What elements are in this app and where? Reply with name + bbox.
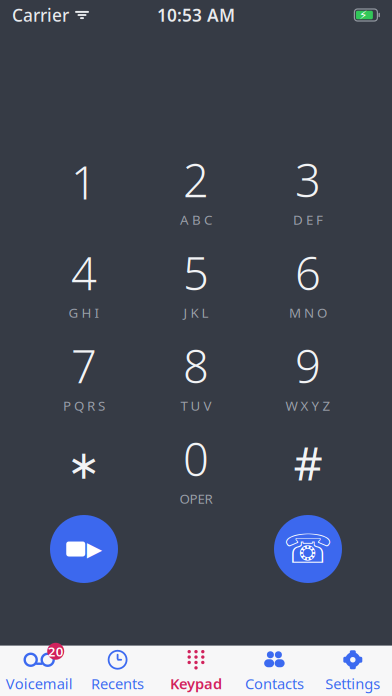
button[interactable]: ∗ <box>32 433 136 503</box>
staticText: 10:53 AM <box>157 3 235 26</box>
button[interactable]: 1 <box>32 154 136 224</box>
staticText: 6 <box>295 242 321 303</box>
staticText: 📞 <box>289 532 326 566</box>
button[interactable]: 3 <box>256 154 360 224</box>
staticText: 8 <box>183 335 209 396</box>
staticText: G H I <box>68 304 99 321</box>
staticText: Recents <box>91 674 144 693</box>
button[interactable]: Call <box>274 515 342 583</box>
staticText: J K L <box>183 304 208 321</box>
staticText: Keypad <box>170 674 222 693</box>
staticText: 3 <box>295 149 321 210</box>
staticText: D E F <box>293 211 323 228</box>
button[interactable]: 4 <box>32 247 136 317</box>
button[interactable]: Settings <box>314 647 392 695</box>
staticText: A B C <box>180 211 212 228</box>
staticText: ▶ <box>87 538 102 560</box>
button[interactable]: Keypad <box>157 647 235 695</box>
staticText: T U V <box>180 397 211 414</box>
button[interactable]: 9 <box>256 340 360 410</box>
button[interactable]: FaceTime video call <box>50 515 118 583</box>
staticText: ∗ <box>67 442 101 488</box>
staticText: M N O <box>289 304 327 321</box>
button[interactable]: 6 <box>256 247 360 317</box>
staticText: 4 <box>71 242 97 303</box>
staticText: 0 <box>183 428 209 489</box>
button[interactable]: Recents <box>78 647 157 695</box>
button[interactable]: 7 <box>32 340 136 410</box>
staticText: Carrier <box>12 3 69 26</box>
staticText: 9 <box>295 335 321 396</box>
staticText: Voicemail <box>6 674 73 693</box>
button[interactable]: # <box>256 433 360 503</box>
staticText: # <box>293 433 322 493</box>
staticText: OPER <box>179 490 212 507</box>
staticText: Settings <box>325 674 380 693</box>
staticText: ⚡︎ <box>359 8 367 22</box>
staticText: 1 <box>71 152 97 212</box>
staticText: P Q R S <box>63 397 105 414</box>
staticText: 7 <box>71 335 97 396</box>
button[interactable]: 5 <box>144 247 248 317</box>
staticText: 2 <box>183 149 209 210</box>
staticText: Contacts <box>245 674 304 693</box>
button[interactable]: Contacts <box>235 647 314 695</box>
button[interactable]: 8 <box>144 340 248 410</box>
staticText: W X Y Z <box>285 397 330 414</box>
button[interactable]: 20 <box>0 647 78 695</box>
button[interactable]: 2 <box>144 154 248 224</box>
button[interactable]: 0 <box>144 433 248 503</box>
staticText: 5 <box>183 242 209 303</box>
staticText: 20 <box>48 642 64 660</box>
staticText: ☏ <box>283 526 333 572</box>
